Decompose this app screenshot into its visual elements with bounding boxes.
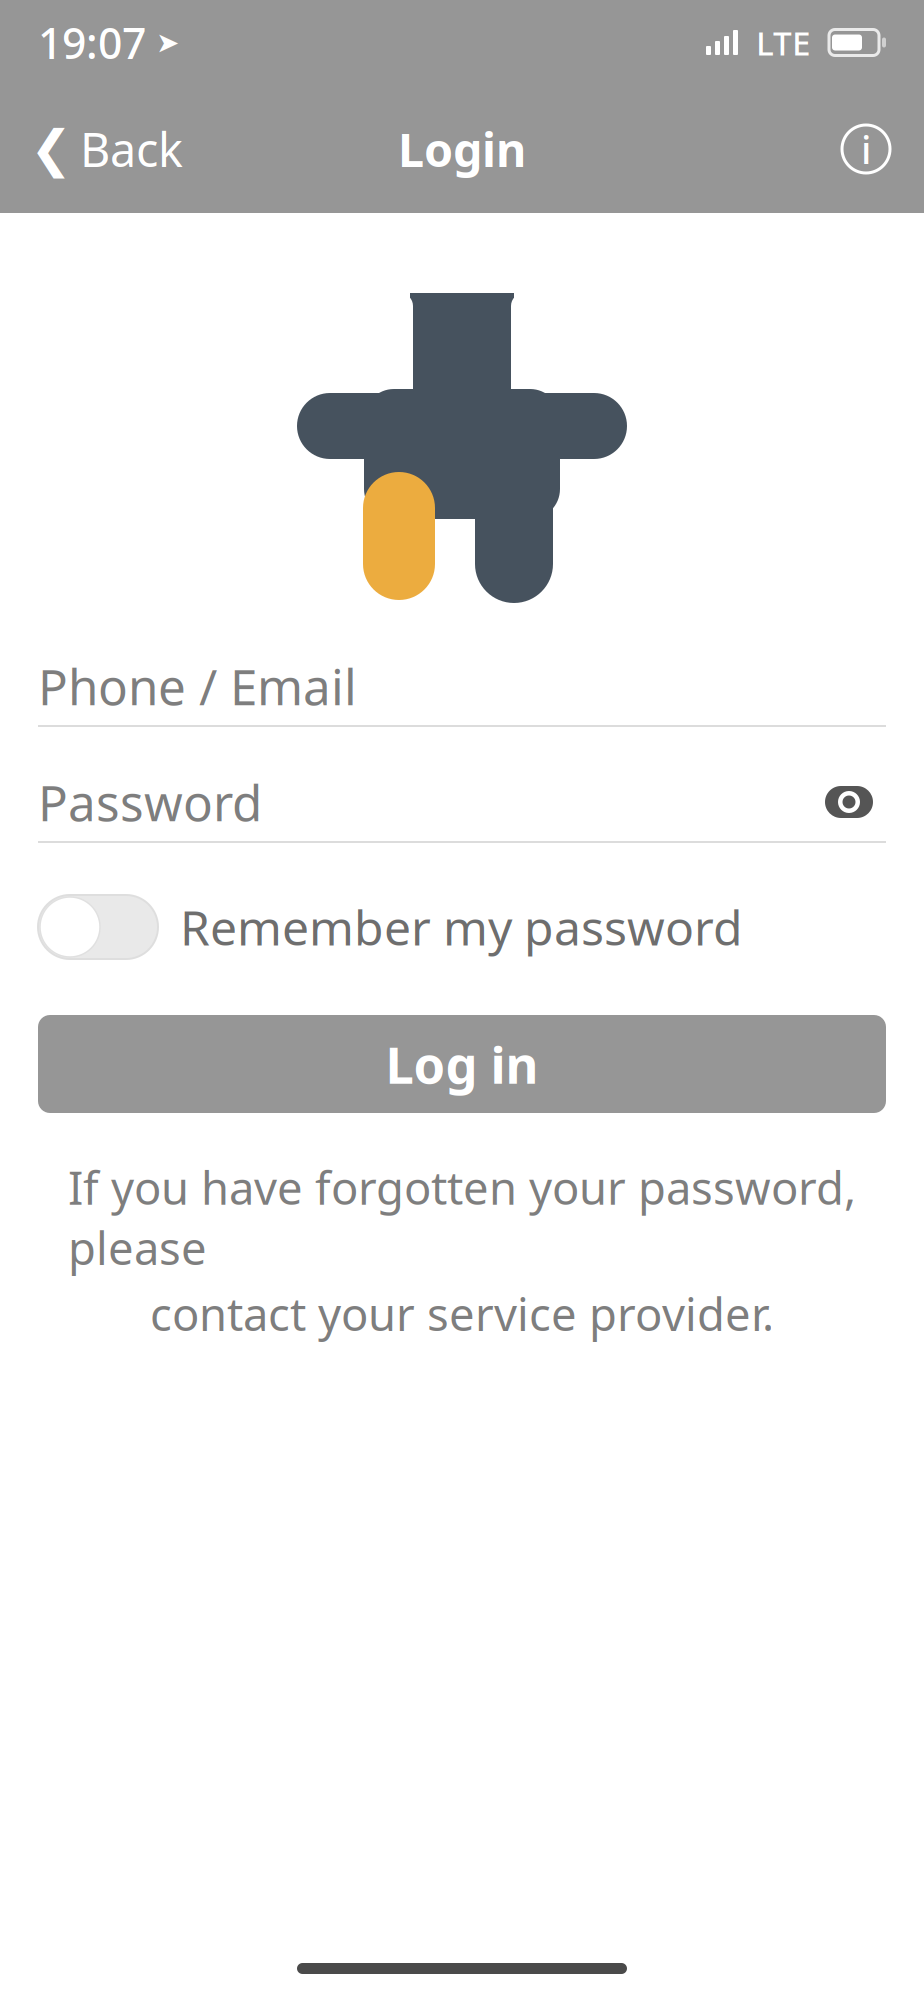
staticText: Remember my password — [180, 895, 743, 959]
staticText: Login — [398, 118, 526, 180]
staticText: ❮ — [30, 120, 72, 178]
staticText: LTE — [738, 20, 829, 65]
staticText: 19:07 — [38, 14, 146, 71]
staticText: Log in — [385, 1030, 538, 1098]
button[interactable]: ❮ — [12, 99, 201, 199]
button[interactable]: Remember my password — [38, 891, 886, 963]
staticText: Back — [80, 118, 183, 180]
staticText: contact your service provider. — [150, 1283, 774, 1344]
button[interactable]: Show password — [812, 773, 886, 831]
staticText: If you have forgotten your password, ple… — [68, 1157, 856, 1277]
staticText: i — [861, 123, 871, 175]
staticText: ➤ — [146, 27, 179, 58]
button[interactable]: Log in — [38, 1015, 886, 1113]
button[interactable]: Information — [820, 103, 912, 195]
staticText: Password — [38, 769, 262, 835]
staticText: Phone / Email — [38, 653, 357, 719]
